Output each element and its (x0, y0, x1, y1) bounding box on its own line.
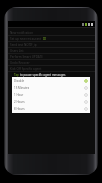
staticText: 8 Hours (14, 107, 25, 111)
button[interactable]: Send test NOTIF_ip (8, 42, 95, 47)
staticText: 15 Minutes (14, 86, 30, 90)
staticText: Undo Recover (10, 61, 30, 65)
button[interactable]: New notification (8, 30, 95, 35)
staticText: Send test NOTIF_ip (10, 43, 37, 47)
staticText: ID (43, 37, 47, 41)
staticText: New notification (10, 31, 34, 35)
button[interactable]: 1 Hour (12, 91, 90, 98)
staticText: Kick Off Specific agent (10, 67, 42, 71)
button[interactable]: 15 Minutes (12, 84, 90, 91)
button[interactable]: Disable (12, 77, 90, 84)
staticText: Users List (10, 49, 24, 53)
staticText: to pause specific agent messages (20, 73, 66, 77)
button[interactable]: 8 Hours (12, 105, 90, 112)
staticText: 1 Hour (14, 93, 24, 97)
staticText: 2 Hours (14, 100, 25, 104)
button[interactable]: Undo Recover (8, 60, 95, 65)
staticText: Set up new restaurant (10, 37, 42, 41)
staticText: Disable (14, 79, 25, 83)
staticText: Tap (14, 73, 19, 77)
button[interactable]: Perform Smart UPDATE (8, 54, 95, 59)
button[interactable]: Users List (8, 48, 95, 53)
button[interactable]: 2 Hours (12, 98, 90, 105)
button[interactable]: Set up new restaurant (8, 36, 95, 41)
button[interactable]: Kick Off Specific agent (8, 66, 95, 71)
staticText: Perform Smart UPDATE (10, 55, 43, 59)
